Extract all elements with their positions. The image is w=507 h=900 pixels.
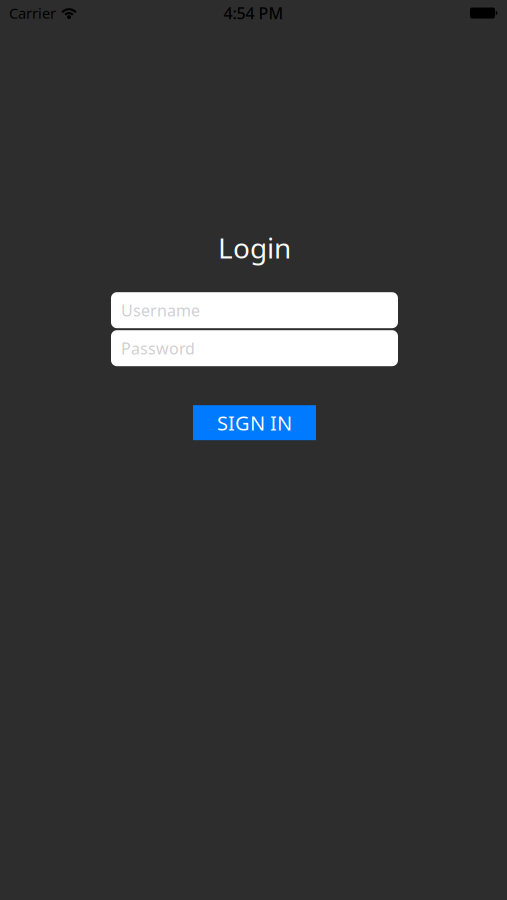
staticText: Password bbox=[121, 338, 195, 359]
button[interactable]: SIGN IN bbox=[193, 405, 316, 440]
staticText: 4:54 PM bbox=[223, 2, 283, 24]
staticText: Login bbox=[218, 229, 291, 266]
staticText: Carrier bbox=[9, 3, 56, 23]
staticText: SIGN IN bbox=[217, 409, 292, 436]
staticText: Username bbox=[121, 300, 200, 321]
